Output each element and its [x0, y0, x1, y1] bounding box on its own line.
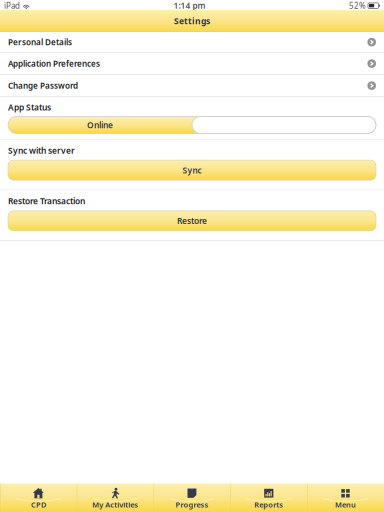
- staticText: Menu: [335, 499, 356, 510]
- button[interactable]: My Activities: [77, 483, 154, 512]
- staticText: iPad: [4, 0, 20, 11]
- staticText: 52%: [349, 0, 366, 11]
- staticText: App Status: [8, 101, 51, 113]
- button[interactable]: Restore: [8, 211, 376, 231]
- staticText: Settings: [174, 15, 210, 27]
- staticText: Restore Transaction: [8, 195, 85, 207]
- button[interactable]: Change Password: [0, 75, 384, 97]
- staticText: Progress: [175, 499, 208, 510]
- button[interactable]: Sync: [8, 160, 376, 180]
- button[interactable]: Progress: [154, 483, 230, 512]
- staticText: CPD: [31, 499, 46, 510]
- staticText: Application Preferences: [8, 58, 100, 69]
- button[interactable]: Offline: [192, 116, 376, 133]
- button[interactable]: Personal Details: [0, 32, 384, 53]
- button[interactable]: Online: [8, 116, 192, 133]
- button[interactable]: Reports: [230, 483, 307, 512]
- staticText: 1:14 pm: [173, 0, 205, 11]
- staticText: Online: [87, 119, 113, 131]
- staticText: Reports: [254, 499, 283, 510]
- button[interactable]: Menu: [307, 483, 384, 512]
- staticText: Personal Details: [8, 37, 72, 48]
- staticText: My Activities: [92, 499, 138, 510]
- button[interactable]: Application Preferences: [0, 53, 384, 75]
- staticText: Restore: [177, 215, 207, 226]
- staticText: Sync with server: [8, 145, 75, 156]
- button[interactable]: CPD: [0, 483, 77, 512]
- staticText: Change Password: [8, 80, 78, 91]
- staticText: Sync: [182, 164, 201, 176]
